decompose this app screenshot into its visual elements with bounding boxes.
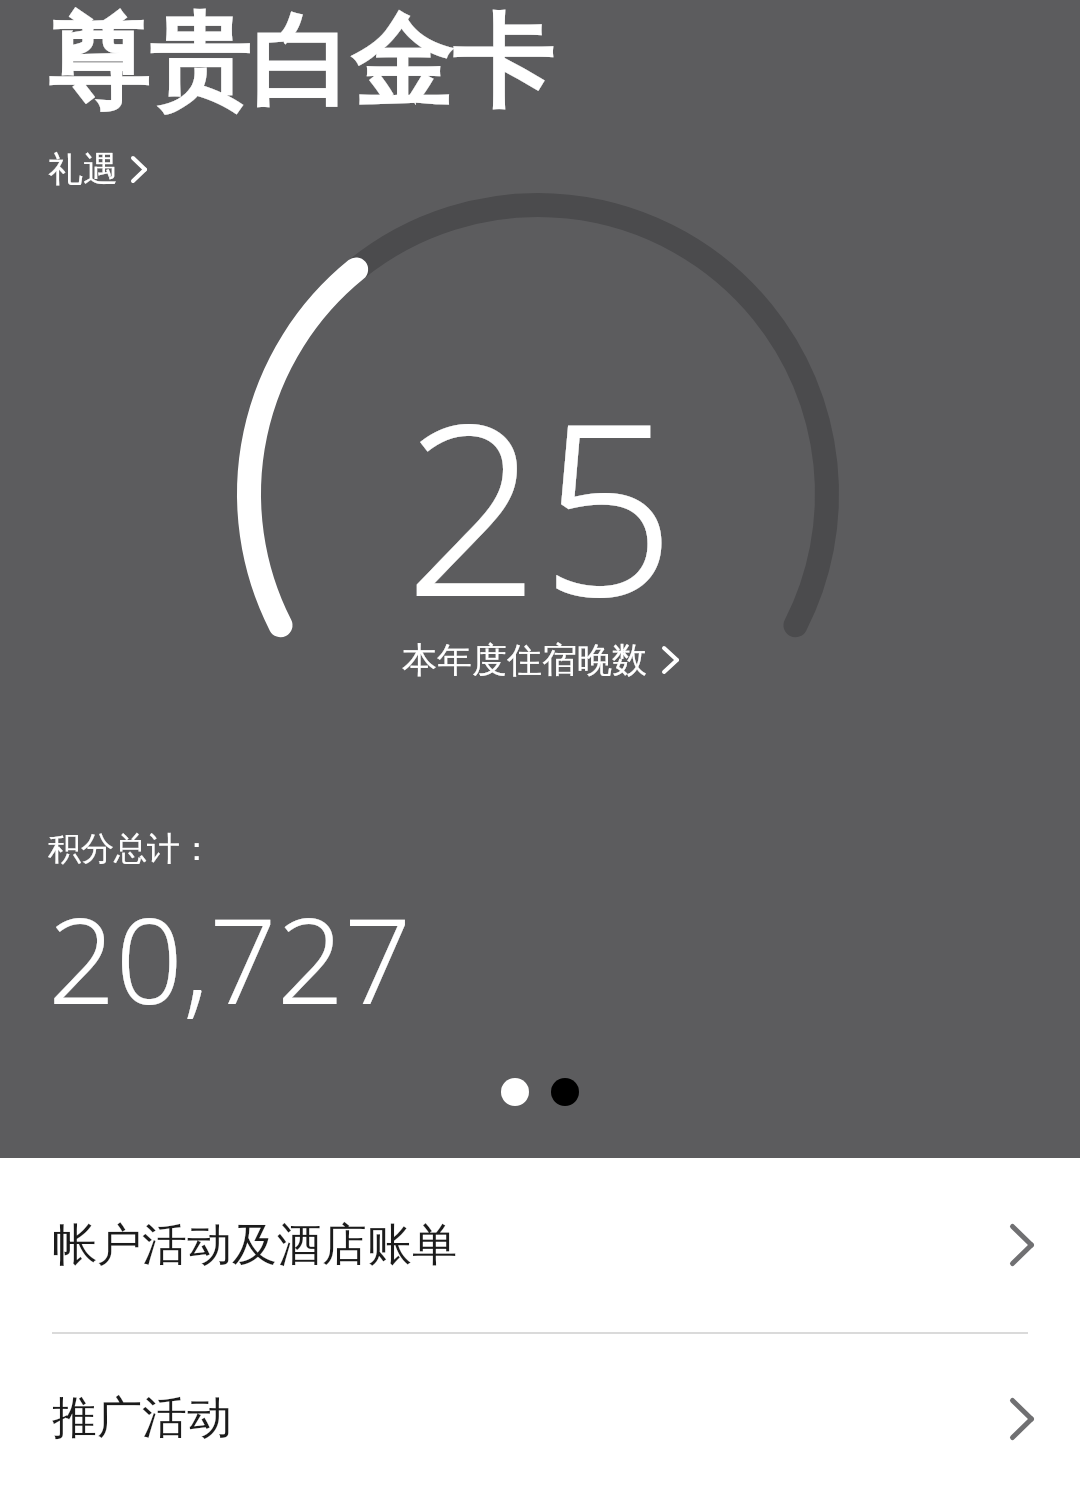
staticText: 推广活动 xyxy=(52,1390,232,1447)
staticText: 本年度住宿晚数 xyxy=(402,638,647,682)
button[interactable]: 帐户活动及酒店账单 xyxy=(0,1158,1080,1332)
staticText: 20,727 xyxy=(48,878,412,1039)
button[interactable]: 推广活动 xyxy=(0,1334,1080,1503)
button[interactable]: Page 1 xyxy=(501,1078,529,1106)
staticText: 尊贵白金卡 xyxy=(48,0,553,127)
staticText: 礼遇 xyxy=(48,147,118,191)
staticText: 25 xyxy=(404,342,676,666)
staticText: 积分总计： xyxy=(48,828,213,870)
button[interactable]: 本年度住宿晚数 xyxy=(402,638,679,682)
button[interactable]: Page 2, selected xyxy=(551,1078,579,1106)
staticText: 帐户活动及酒店账单 xyxy=(52,1217,457,1274)
button[interactable]: 礼遇 xyxy=(48,147,147,191)
